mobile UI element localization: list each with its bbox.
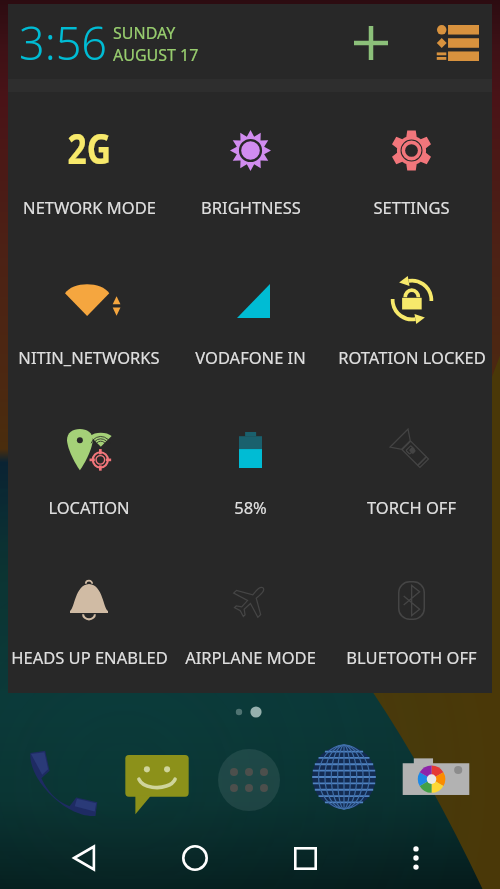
staticText: 3:56 [19,12,108,73]
staticText: SETTINGS [373,196,450,218]
button[interactable]: Home [169,832,221,884]
staticText: SUNDAY [113,22,176,44]
button[interactable]: 2G [8,88,170,238]
button[interactable]: Edit tiles [431,17,483,69]
button[interactable]: SETTINGS [331,88,492,238]
button[interactable]: AIRPLANE MODE [170,538,331,688]
button[interactable]: HEADS UP ENABLED [8,538,170,688]
button[interactable]: BLUETOOTH OFF [331,538,492,688]
button[interactable]: Browser [307,740,381,814]
staticText: AUGUST 17 [113,44,199,66]
staticText: TORCH OFF [367,496,456,518]
staticText: NETWORK MODE [23,196,156,218]
button[interactable]: NITIN_NETWORKS [8,238,170,388]
button[interactable]: Messaging [121,742,193,818]
button[interactable]: VODAFONE IN [170,238,331,388]
button[interactable]: Apps [218,749,280,811]
button[interactable]: 58% [170,388,331,538]
staticText: BRIGHTNESS [201,196,301,218]
staticText: LOCATION [48,496,130,518]
staticText: AIRPLANE MODE [185,646,316,668]
staticText: ROTATION LOCKED [338,346,486,368]
button[interactable]: Back [58,832,110,884]
staticText: NITIN_NETWORKS [18,346,160,368]
button[interactable]: Add tile [345,17,397,69]
button[interactable]: Recents [279,832,331,884]
staticText: VODAFONE IN [195,346,306,368]
button[interactable]: Camera [399,748,473,809]
button[interactable]: Phone [27,743,101,817]
staticText: 2G [67,119,111,167]
button[interactable]: BRIGHTNESS [170,88,331,238]
button[interactable]: TORCH OFF [331,388,492,538]
staticText: HEADS UP ENABLED [11,646,168,668]
staticText: 58% [234,496,267,518]
button[interactable]: LOCATION [8,388,170,538]
button[interactable]: ROTATION LOCKED [331,238,492,388]
staticText: BLUETOOTH OFF [346,646,477,668]
button[interactable]: More options [390,832,442,884]
